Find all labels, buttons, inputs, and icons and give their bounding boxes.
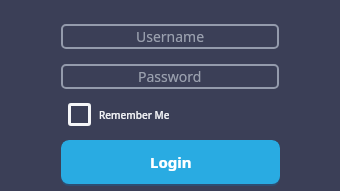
staticText: Login bbox=[150, 152, 192, 172]
button[interactable]: Remember Me bbox=[61, 103, 280, 126]
button[interactable]: Username bbox=[61, 24, 279, 49]
staticText: Password bbox=[138, 67, 202, 86]
button[interactable]: Login bbox=[61, 140, 280, 186]
button[interactable]: Password bbox=[61, 64, 279, 89]
staticText: Remember Me bbox=[99, 108, 170, 122]
staticText: Username bbox=[136, 27, 205, 46]
